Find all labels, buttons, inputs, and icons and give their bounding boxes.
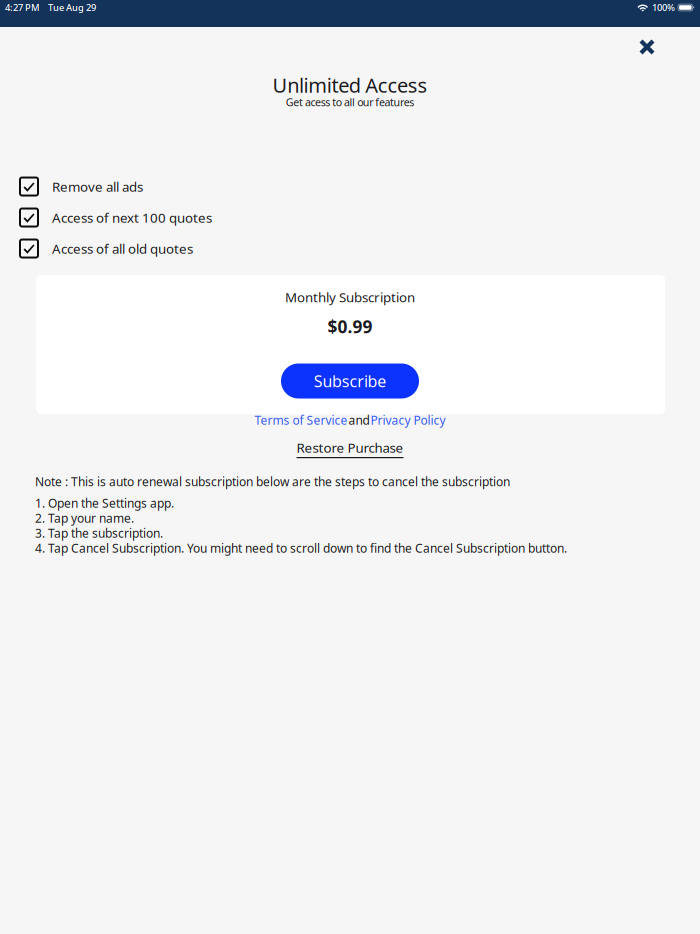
- staticText: Remove all ads: [52, 178, 143, 195]
- staticText: Tue Aug 29: [48, 1, 96, 14]
- staticText: Privacy Policy: [370, 412, 445, 428]
- staticText: Access of next 100 quotes: [52, 209, 212, 226]
- staticText: Access of all old quotes: [52, 240, 193, 257]
- button[interactable]: Restore Purchase: [296, 439, 403, 458]
- staticText: Monthly Subscription: [285, 288, 415, 306]
- staticText: Get acess to all our features: [286, 95, 414, 109]
- staticText: Subscribe: [314, 370, 386, 392]
- staticText: $0.99: [327, 315, 372, 338]
- staticText: and: [348, 412, 369, 428]
- staticText: Terms of Service: [254, 412, 347, 428]
- staticText: 4:27 PM: [5, 1, 40, 14]
- button[interactable]: Close: [632, 32, 662, 62]
- staticText: Note : This is auto renewal subscription…: [35, 473, 510, 489]
- staticText: Restore Purchase: [296, 439, 403, 456]
- button[interactable]: Terms of Service: [254, 412, 347, 428]
- button[interactable]: Privacy Policy: [370, 412, 445, 428]
- staticText: 1. Open the Settings app.: [35, 495, 174, 511]
- button[interactable]: Subscribe: [281, 363, 419, 398]
- staticText: 3. Tap the subscription.: [35, 525, 163, 541]
- staticText: 100%: [652, 1, 675, 14]
- staticText: 4. Tap Cancel Subscription. You might ne…: [35, 540, 567, 556]
- staticText: 2. Tap your name.: [35, 510, 134, 526]
- staticText: Unlimited Access: [273, 72, 427, 98]
